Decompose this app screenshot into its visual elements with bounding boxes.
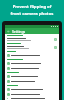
other: Toggle option <box>7 80 10 83</box>
other: Toggle option <box>7 75 10 78</box>
button[interactable]: Back <box>7 30 10 33</box>
button[interactable]: Toggle option <box>5 74 59 79</box>
other: Toggle option <box>7 93 10 96</box>
other: Toggle option <box>7 88 10 91</box>
button[interactable]: Toggle option <box>5 53 59 58</box>
other: Option action <box>54 38 57 41</box>
button[interactable]: Toggle option <box>5 79 59 84</box>
other: Option action <box>54 46 57 49</box>
other: Toggle option <box>7 54 10 57</box>
staticText: Settings <box>12 29 26 34</box>
staticText: Prevent flipping of <box>4 4 60 10</box>
button[interactable]: Option action <box>5 45 59 50</box>
button[interactable]: Toggle option <box>5 61 59 66</box>
button[interactable]: Option action <box>5 37 59 42</box>
button[interactable]: Toggle option <box>5 66 59 71</box>
button[interactable]: Toggle option <box>5 97 59 100</box>
staticText: front camera photos <box>4 11 60 17</box>
button[interactable]: Toggle option <box>5 92 59 97</box>
other: Toggle option <box>7 98 10 99</box>
other: Toggle option <box>7 62 10 65</box>
button[interactable]: Toggle option <box>5 87 59 92</box>
other: Toggle option <box>7 67 10 70</box>
